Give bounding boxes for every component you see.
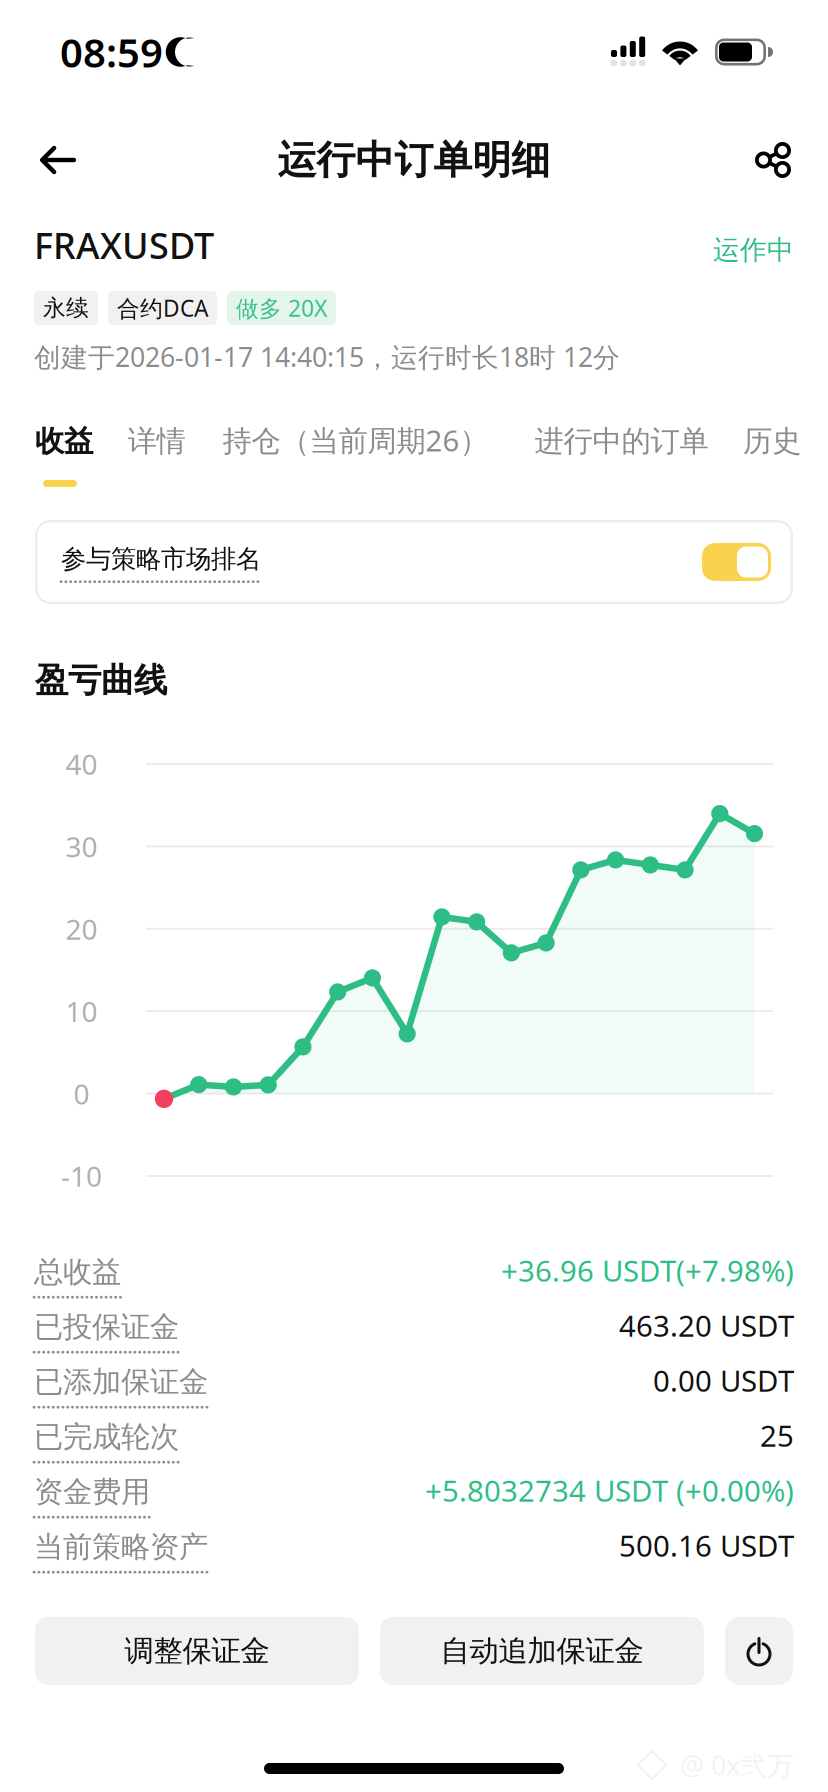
staticText: 详情 [127, 423, 185, 459]
staticText: 总收益 [34, 1254, 121, 1290]
staticText: 合约DCA [117, 293, 208, 323]
button[interactable]: 详情 [127, 423, 185, 459]
staticText: 参与策略市场排名 [61, 543, 261, 574]
staticText: 25 [760, 1416, 794, 1455]
staticText: 永续 [43, 294, 89, 322]
button[interactable]: Share [734, 120, 812, 200]
staticText: +5.8032734 USDT (+0.00%) [425, 1471, 794, 1510]
button[interactable]: Stop strategy [725, 1617, 793, 1685]
staticText: 做多 20X [236, 293, 327, 323]
staticText: 已添加保证金 [34, 1364, 208, 1400]
staticText: +36.96 USDT(+7.98%) [501, 1251, 794, 1290]
staticText: 盈亏曲线 [35, 660, 167, 701]
staticText: 0 [73, 1075, 89, 1112]
button[interactable]: 自动追加保证金 [380, 1617, 704, 1685]
staticText: 调整保证金 [124, 1633, 269, 1669]
staticText: 10 [65, 993, 97, 1030]
staticText: 40 [65, 745, 97, 783]
staticText: 运作中 [713, 234, 794, 266]
button[interactable]: 进行中的订单 [534, 423, 708, 459]
button[interactable]: 持仓（当前周期26） [222, 420, 488, 459]
staticText: 运行中订单明细 [277, 136, 550, 184]
staticText: 20 [65, 910, 97, 947]
staticText: 资金费用 [34, 1474, 150, 1510]
button[interactable]: 调整保证金 [35, 1617, 359, 1685]
staticText: 30 [65, 828, 97, 865]
staticText: 0.00 USDT [653, 1361, 794, 1400]
staticText: 进行中的订单 [534, 423, 708, 459]
staticText: -10 [61, 1157, 102, 1195]
button[interactable]: 历史 [743, 423, 801, 459]
staticText: 自动追加保证金 [440, 1633, 643, 1669]
staticText: 历史 [743, 423, 801, 459]
staticText: FRAXUSDT [34, 221, 214, 269]
staticText: 持仓（当前周期26） [222, 420, 488, 459]
staticText: 当前策略资产 [34, 1529, 208, 1565]
staticText: 创建于2026-01-17 14:40:15，运行时长18时 12分 [34, 339, 620, 374]
staticText: 已投保证金 [34, 1309, 179, 1345]
staticText: 500.16 USDT [619, 1526, 794, 1565]
button[interactable]: Back [19, 120, 97, 200]
button[interactable]: 参与策略市场排名 [35, 520, 793, 604]
staticText: 收益 [35, 423, 93, 459]
staticText: @ 0x弐万 [666, 1747, 794, 1783]
staticText: 已完成轮次 [34, 1419, 179, 1455]
staticText: 08:59 [60, 25, 163, 78]
staticText: 463.20 USDT [619, 1306, 794, 1345]
button[interactable]: 收益 [35, 423, 93, 459]
